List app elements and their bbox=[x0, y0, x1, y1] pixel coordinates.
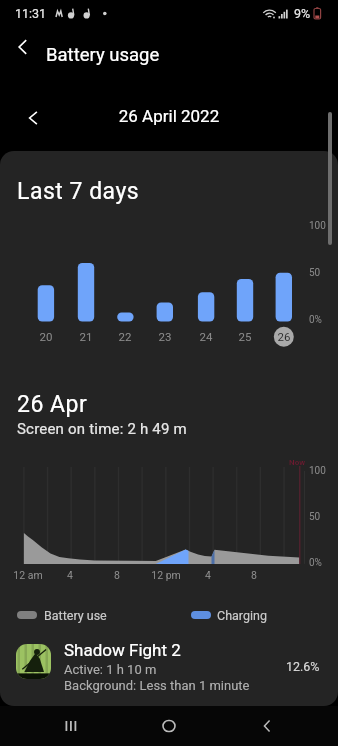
staticText: 24 bbox=[192, 330, 220, 343]
staticText: 22 bbox=[111, 330, 139, 343]
staticText: 26 Apr bbox=[17, 391, 88, 418]
button[interactable]: Navigate up bbox=[2, 26, 44, 68]
staticText: 100 bbox=[309, 220, 326, 232]
button[interactable]: Previous day bbox=[14, 100, 50, 136]
staticText: Active: 1 h 10 m bbox=[64, 662, 157, 677]
staticText: Screen on time: 2 h 49 m bbox=[17, 420, 187, 438]
staticText: 8 bbox=[95, 569, 139, 581]
staticText: 26 bbox=[270, 330, 298, 343]
staticText: 12 pm bbox=[144, 569, 188, 581]
staticText: 23 bbox=[151, 330, 179, 343]
staticText: 50 bbox=[309, 267, 321, 279]
button[interactable]: Back bbox=[243, 706, 291, 746]
staticText: 21 bbox=[72, 330, 100, 343]
staticText: 9% bbox=[294, 6, 311, 21]
staticText: 4 bbox=[186, 569, 230, 581]
staticText: 11:31 bbox=[15, 6, 47, 21]
staticText: 26 April 2022 bbox=[0, 106, 338, 126]
button[interactable]: Shadow Fight 2 bbox=[0, 636, 338, 696]
staticText: 0% bbox=[309, 314, 322, 326]
staticText: Battery usage bbox=[46, 44, 160, 66]
staticText: Background: Less than 1 minute bbox=[64, 678, 250, 693]
staticText: 0% bbox=[309, 557, 322, 569]
staticText: Charging bbox=[217, 608, 267, 623]
staticText: 12 am bbox=[6, 569, 50, 581]
button[interactable]: Charging bbox=[191, 607, 267, 623]
staticText: Shadow Fight 2 bbox=[64, 640, 181, 660]
staticText: 4 bbox=[48, 569, 92, 581]
staticText: Battery use bbox=[44, 608, 107, 623]
staticText: 20 bbox=[32, 330, 60, 343]
button[interactable]: Home bbox=[145, 706, 193, 746]
button[interactable]: Battery use bbox=[17, 607, 107, 623]
staticText: Last 7 days bbox=[17, 178, 140, 205]
staticText: 12.6% bbox=[286, 659, 320, 674]
staticText: 50 bbox=[309, 511, 321, 523]
staticText: 8 bbox=[232, 569, 276, 581]
staticText: 100 bbox=[309, 465, 326, 477]
staticText: Now bbox=[289, 458, 306, 467]
button[interactable]: Recent apps bbox=[47, 706, 95, 746]
staticText: 25 bbox=[231, 330, 259, 343]
